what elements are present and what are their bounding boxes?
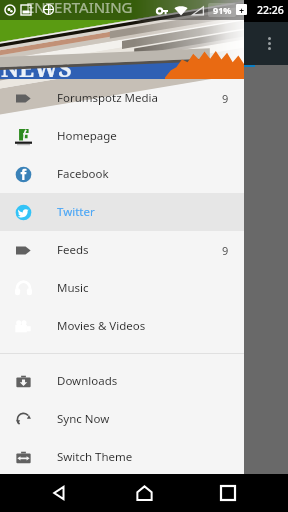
staticText: Movies & Videos: [57, 318, 146, 334]
button[interactable]: Feeds: [0, 231, 244, 269]
staticText: 9: [222, 91, 229, 106]
button[interactable]: Switch Theme: [0, 438, 244, 476]
button[interactable]: More options: [257, 28, 281, 58]
button[interactable]: Twitter: [0, 193, 244, 231]
button[interactable]: Recents: [204, 474, 252, 512]
button[interactable]: Music: [0, 269, 244, 307]
staticText: Facebook: [57, 166, 109, 182]
button[interactable]: Facebook: [0, 155, 244, 193]
staticText: Downloads: [57, 373, 118, 389]
button[interactable]: Homepage: [0, 117, 244, 155]
staticText: Twitter: [57, 204, 95, 220]
button[interactable]: Home: [120, 474, 168, 512]
staticText: Sync Now: [57, 411, 110, 427]
staticText: 91%: [213, 4, 232, 16]
staticText: 9: [222, 243, 229, 258]
staticText: Switch Theme: [57, 449, 133, 465]
staticText: Music: [57, 280, 89, 296]
button[interactable]: Movies & Videos: [0, 307, 244, 345]
button[interactable]: Forumspotz Media: [0, 79, 244, 117]
staticText: Forumspotz Media: [57, 90, 159, 106]
staticText: NEWS: [1, 52, 72, 83]
button[interactable]: Sync Now: [0, 400, 244, 438]
staticText: Homepage: [57, 128, 117, 144]
button[interactable]: Back: [36, 474, 84, 512]
staticText: 22:26: [257, 3, 284, 17]
staticText: ENTERTAINING: [26, 0, 133, 17]
staticText: +: [239, 4, 245, 15]
button[interactable]: Downloads: [0, 362, 244, 400]
staticText: Feeds: [57, 242, 89, 258]
